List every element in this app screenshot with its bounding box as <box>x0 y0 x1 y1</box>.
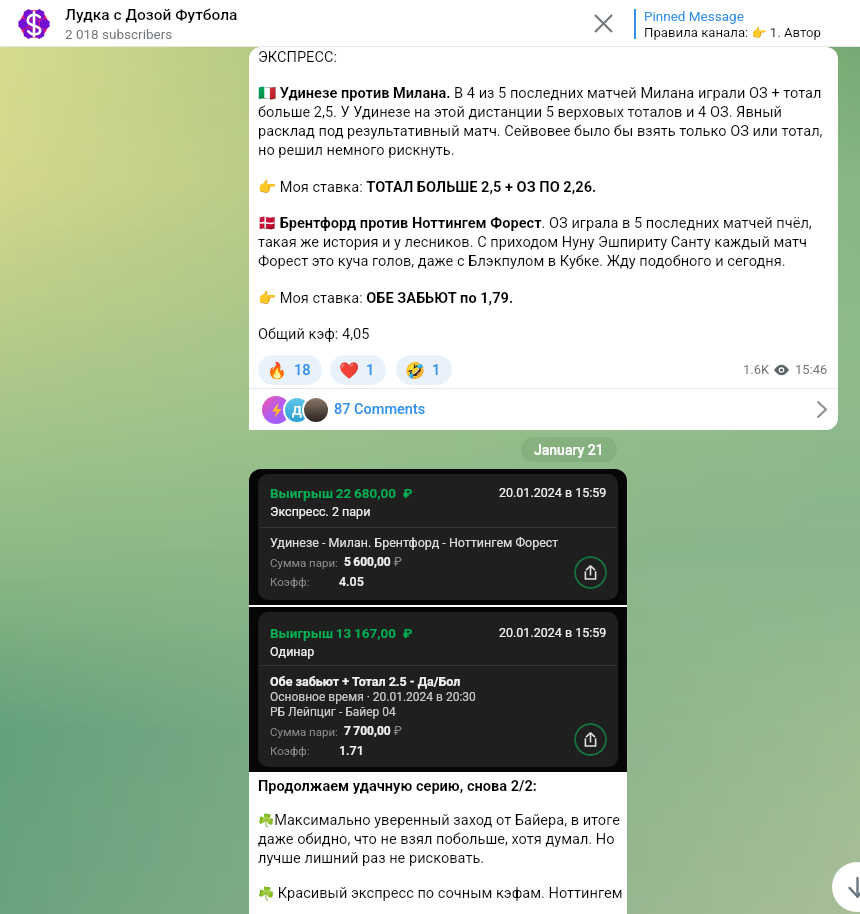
staticText: 20.01.2024 в 15:59 <box>499 485 607 500</box>
staticText: 1.6K <box>743 362 770 377</box>
button[interactable]: January 21 <box>521 437 617 462</box>
staticText: ❤️ <box>339 361 359 380</box>
button[interactable]: Д <box>249 389 838 430</box>
staticText: January 21 <box>534 442 604 458</box>
staticText: 18 <box>294 362 311 379</box>
staticText: Одинар <box>270 644 315 659</box>
staticText: 🔥 <box>267 361 287 380</box>
staticText: 1.71 <box>339 743 364 758</box>
button[interactable]: Share <box>574 556 607 589</box>
staticText: 1 <box>366 362 375 379</box>
staticText: 15:46 <box>795 362 828 377</box>
staticText: 87 Comments <box>334 401 426 418</box>
staticText: Экспресс. 2 пари <box>270 504 371 519</box>
button[interactable]: Scroll to bottom <box>832 862 860 912</box>
staticText: 👉 Моя ставка: ТОТАЛ БОЛЬШЕ 2,5 + ОЗ ПО 2… <box>258 178 597 195</box>
button[interactable]: Выигрыш 13 167,00 ₽ <box>258 612 618 767</box>
staticText: 2 018 subscribers <box>65 26 173 42</box>
button[interactable]: Выигрыш 22 680,00 ₽ <box>258 474 618 600</box>
staticText: Pinned Message <box>644 8 744 24</box>
staticText: 5 600,00 ₽ <box>344 555 402 569</box>
staticText: 🇮🇹 Удинезе против Милана. В 4 из 5 после… <box>258 84 826 159</box>
button[interactable]: Share <box>574 723 607 756</box>
staticText: Коэфф: <box>270 744 310 757</box>
button[interactable]: Close pinned message <box>588 0 618 47</box>
staticText: Коэфф: <box>270 575 310 588</box>
button[interactable]: Продолжаем удачную серию, снова 2/2: <box>249 772 627 914</box>
button[interactable]: 🔥 <box>258 355 322 385</box>
staticText: Д <box>292 403 302 418</box>
button[interactable]: Pinned Message <box>634 0 860 47</box>
staticText: 🤣 <box>405 361 425 380</box>
staticText: Выигрыш 22 680,00 ₽ <box>270 485 413 501</box>
button[interactable]: ЭКСПРЕСС: <box>249 47 838 430</box>
staticText: РБ Лейпциг - Байер 04 <box>270 705 396 719</box>
staticText: Сумма пари: <box>270 556 338 569</box>
staticText: ☘️ Красивый экспресс по сочным кэфам. Но… <box>258 884 623 901</box>
staticText: Основное время · 20.01.2024 в 20:30 <box>270 690 476 704</box>
staticText: 20.01.2024 в 15:59 <box>499 625 607 640</box>
staticText: 7 700,00 ₽ <box>344 724 402 738</box>
staticText: 4.05 <box>339 574 364 589</box>
button[interactable]: 🤣 <box>396 355 452 385</box>
staticText: ЭКСПРЕСС: <box>258 48 337 65</box>
staticText: 👉 Моя ставка: ОБЕ ЗАБЬЮТ по 1,79. <box>258 289 514 306</box>
staticText: Выигрыш 13 167,00 ₽ <box>270 625 413 641</box>
staticText: Удинезе - Милан. Брентфорд - Ноттингем Ф… <box>270 535 559 550</box>
staticText: Общий кэф: 4,05 <box>258 325 370 342</box>
button[interactable]: ❤️ <box>330 355 386 385</box>
staticText: Обе забьют + Тотал 2.5 - Да/Бол <box>270 674 461 689</box>
staticText: Продолжаем удачную серию, снова 2/2: <box>258 777 537 794</box>
staticText: ☘️Максимально уверенный заход от Байера,… <box>258 811 625 867</box>
staticText: Лудка с Дозой Футбола <box>65 6 238 24</box>
staticText: 🇩🇰 Брентфорд против Ноттингем Форест. ОЗ… <box>258 214 826 270</box>
staticText: Правила канала: 👉 1. Автор капп… <box>644 25 860 40</box>
staticText: Сумма пари: <box>270 725 338 738</box>
staticText: 1 <box>432 362 441 379</box>
